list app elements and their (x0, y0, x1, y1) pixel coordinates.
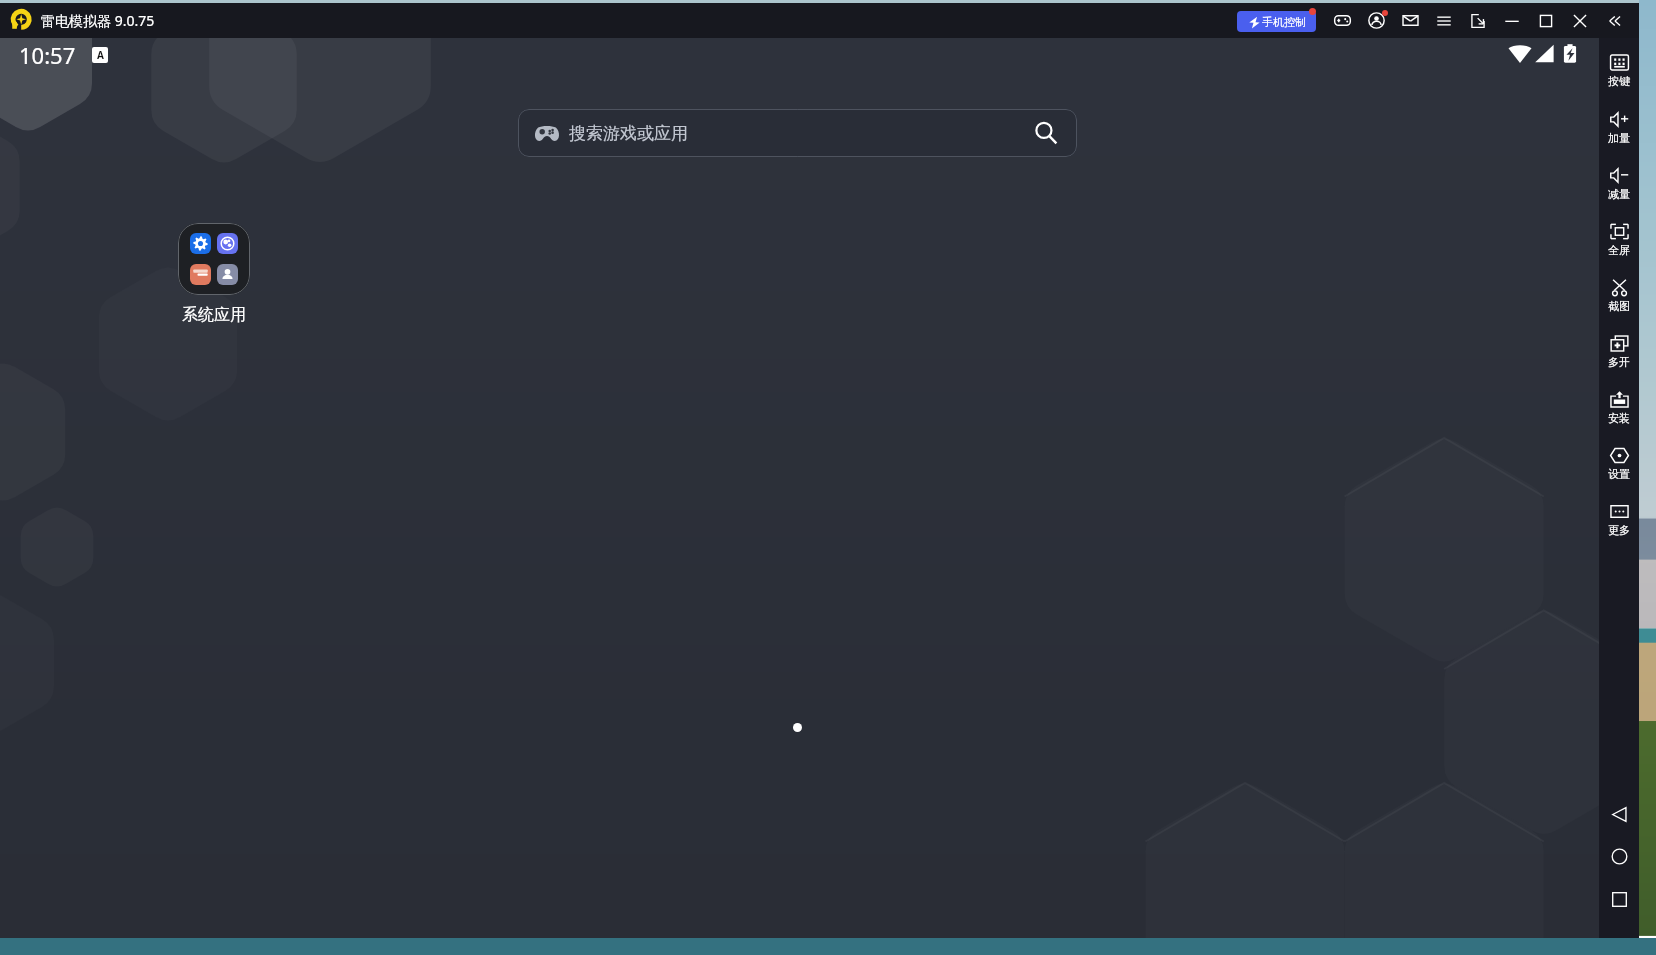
staticText: 安装 (1608, 411, 1630, 425)
button[interactable]: Home (1599, 847, 1639, 865)
button[interactable]: 全屏 (1599, 223, 1639, 257)
button[interactable]: 更多 (1599, 503, 1639, 537)
button[interactable]: 手机控制 (1237, 11, 1316, 32)
staticText: 设置 (1608, 467, 1630, 481)
button[interactable]: 截图 (1599, 279, 1639, 313)
button[interactable]: Back (1599, 805, 1639, 823)
button[interactable]: 多开 (1599, 335, 1639, 369)
button[interactable]: 设置 (1599, 447, 1639, 481)
staticText: 雷电模拟器 9.0.75 (41, 11, 155, 30)
button[interactable]: 减量 (1599, 167, 1639, 201)
button[interactable]: Menu (1427, 3, 1461, 38)
staticText: 全屏 (1608, 243, 1630, 257)
button[interactable]: Collapse sidebar (1597, 3, 1631, 38)
staticText: 10:57 (19, 40, 76, 70)
staticText: A (97, 48, 104, 62)
button[interactable]: Restore down (1461, 3, 1495, 38)
button[interactable]: 安装 (1599, 391, 1639, 425)
button[interactable]: 按键 (1599, 54, 1639, 88)
staticText: 手机控制 (1262, 15, 1306, 29)
button[interactable]: Game center (1325, 3, 1359, 38)
staticText: 更多 (1608, 523, 1630, 537)
staticText: 系统应用 (182, 305, 246, 325)
button[interactable]: 搜索游戏或应用 (518, 109, 1077, 157)
button[interactable]: Minimize (1495, 3, 1529, 38)
button[interactable]: 系统应用 (160, 223, 268, 325)
button[interactable]: Close (1563, 3, 1597, 38)
button[interactable]: Recents (1599, 890, 1639, 908)
staticText: 加量 (1608, 131, 1630, 145)
staticText: 减量 (1608, 187, 1630, 201)
staticText: 按键 (1608, 74, 1630, 88)
staticText: 截图 (1608, 299, 1630, 313)
staticText: 搜索游戏或应用 (569, 123, 688, 144)
button[interactable]: Account (1359, 3, 1393, 38)
button[interactable]: Maximize (1529, 3, 1563, 38)
button[interactable]: Mail (1393, 3, 1427, 38)
staticText: 多开 (1608, 355, 1630, 369)
button[interactable]: 加量 (1599, 111, 1639, 145)
